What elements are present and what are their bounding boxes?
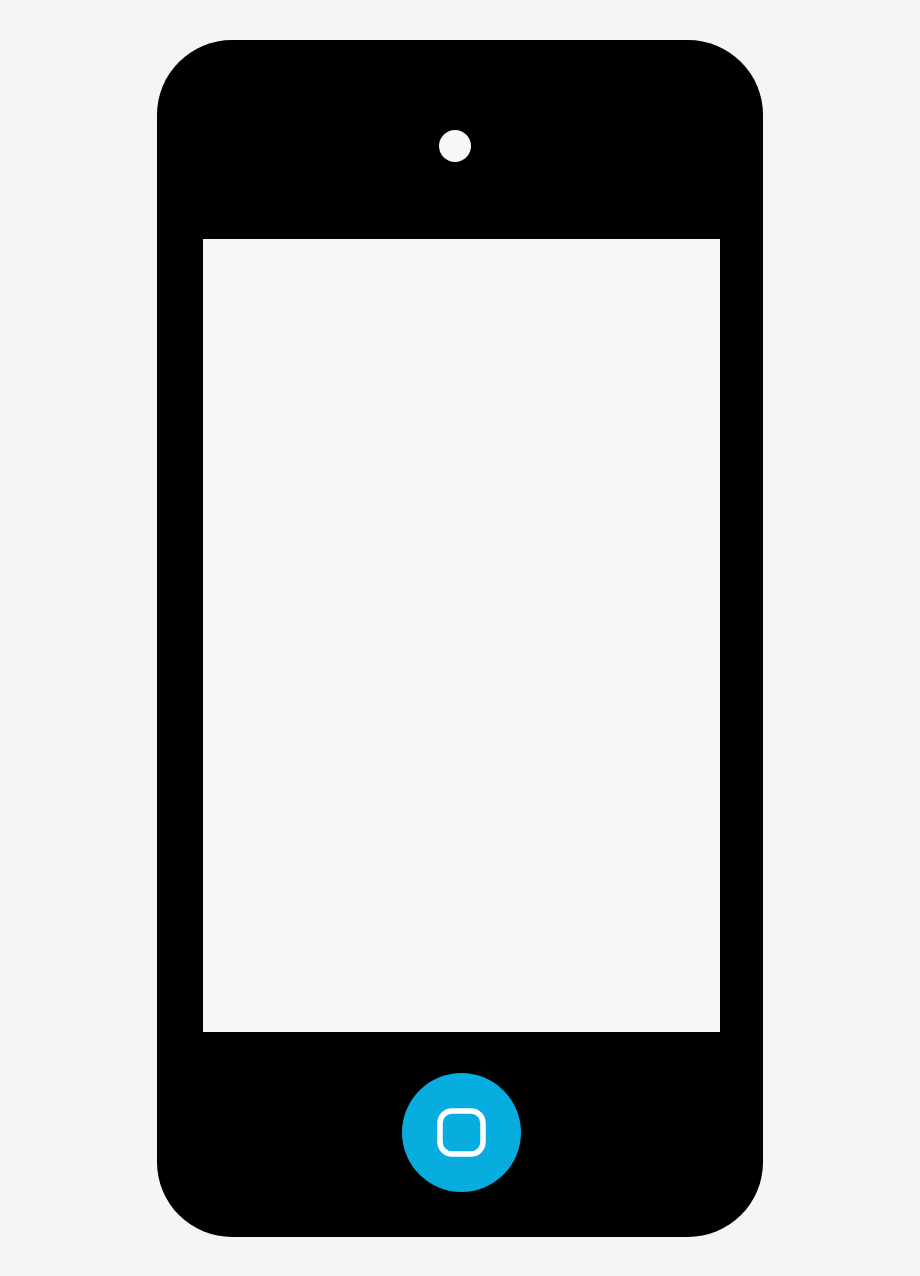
button[interactable]: Smartphone device illustration [0,0,920,1276]
